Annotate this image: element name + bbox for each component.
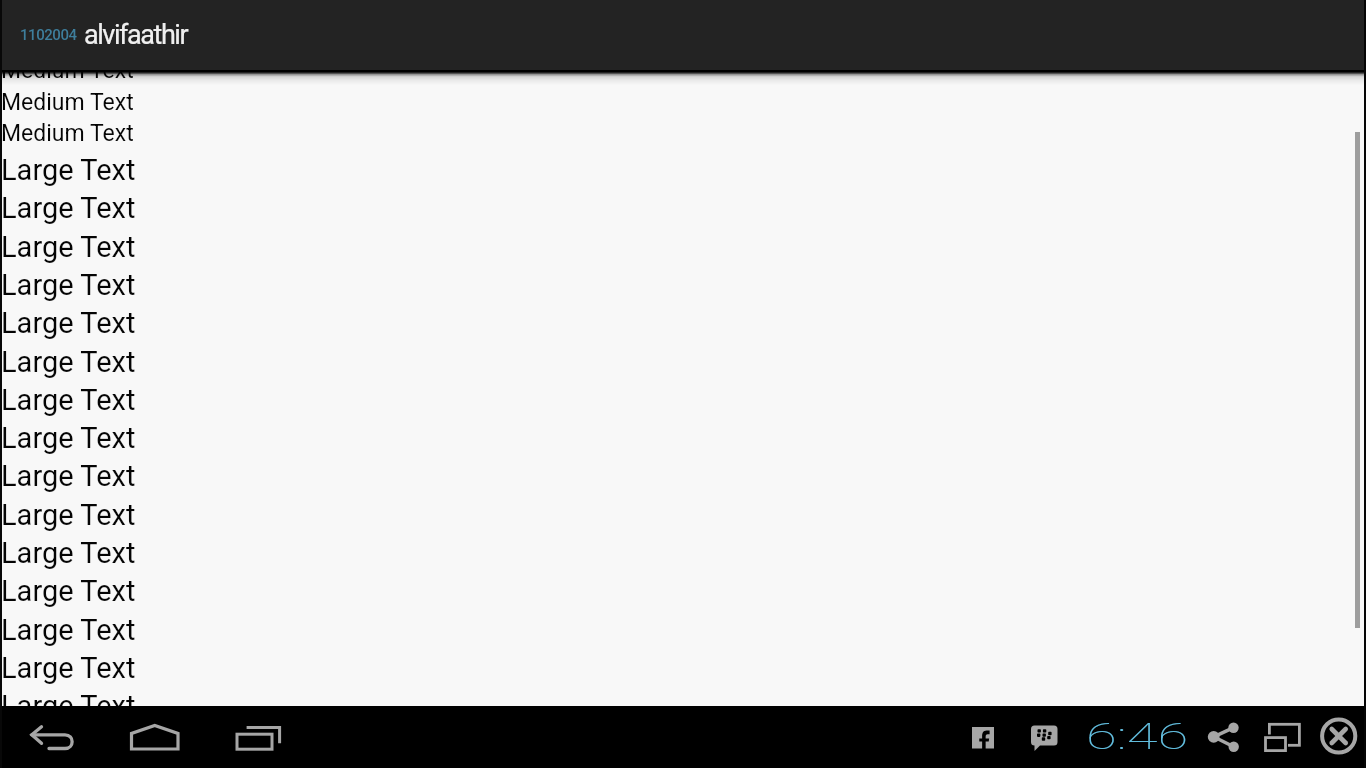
button[interactable]: Large Text [0,571,1366,610]
button[interactable]: Large Text [0,227,1366,266]
button[interactable]: Screenshot [1260,718,1304,760]
button[interactable]: Medium Text [0,54,1366,86]
staticText: Large Text [1,728,136,762]
button[interactable]: Large Text [0,150,1366,189]
staticText: Large Text [1,383,136,417]
button[interactable]: Large Text [0,342,1366,381]
button[interactable]: Large Text [0,533,1366,572]
staticText: alvifaathir [84,19,188,51]
button[interactable]: Large Text [0,725,1366,764]
staticText: Medium Text [1,120,134,147]
button[interactable]: Share [1206,718,1244,756]
button[interactable]: Large Text [0,648,1366,687]
staticText: Large Text [1,651,136,685]
staticText: Large Text [1,345,136,379]
staticText: Large Text [1,230,136,264]
staticText: Large Text [1,153,136,187]
button[interactable]: Large Text [0,610,1366,649]
staticText: Medium Text [1,57,134,84]
button[interactable]: Large Text [0,265,1366,304]
button[interactable]: Back [18,714,88,762]
button[interactable]: Medium Text [0,86,1366,118]
button[interactable]: Recent apps [222,714,292,762]
button[interactable]: Large Text [0,380,1366,419]
button[interactable]: Medium Text [0,117,1366,149]
staticText: Large Text [1,459,136,493]
staticText: Large Text [1,191,136,225]
staticText: Medium Text [1,89,134,116]
staticText: Large Text [1,498,136,532]
button[interactable]: 6:46 [1086,714,1196,760]
staticText: 6:46 [1086,716,1189,758]
button[interactable]: Large Text [0,188,1366,227]
button[interactable]: Large Text [0,303,1366,342]
button[interactable]: Large Text [0,495,1366,534]
staticText: Large Text [1,306,136,340]
button[interactable]: Large Text [0,456,1366,495]
staticText: 1102004 [20,26,77,44]
staticText: Large Text [1,268,136,302]
button[interactable]: Home [120,714,190,762]
staticText: Large Text [1,421,136,455]
button[interactable]: Large Text [0,418,1366,457]
staticText: Large Text [1,613,136,647]
staticText: Large Text [1,536,136,570]
staticText: Large Text [1,574,136,608]
button[interactable]: Facebook [964,718,1002,756]
button[interactable]: Large Text [0,686,1366,725]
button[interactable]: Close [1318,718,1362,762]
button[interactable]: 1102004 [0,0,1366,70]
staticText: Large Text [1,689,136,723]
button[interactable]: Messages [1026,718,1064,760]
